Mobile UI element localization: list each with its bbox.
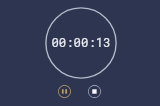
button[interactable]: Stop: [88, 85, 101, 98]
staticText: 00:00:13: [1, 34, 160, 106]
button[interactable]: Pause: [58, 85, 71, 98]
